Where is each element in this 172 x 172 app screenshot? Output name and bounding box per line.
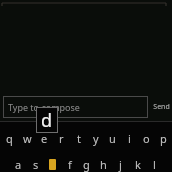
button[interactable]: a	[9, 155, 27, 172]
button[interactable]: r	[53, 129, 70, 147]
button[interactable]: q	[0, 129, 18, 147]
staticText: r	[59, 131, 64, 146]
staticText: g	[83, 157, 90, 172]
button[interactable]: l	[146, 155, 163, 172]
staticText: a	[15, 157, 22, 172]
staticText: w	[23, 131, 32, 146]
button[interactable]: g	[78, 155, 95, 172]
staticText: Send	[153, 102, 170, 112]
staticText: h	[100, 157, 107, 172]
staticText: u	[109, 131, 116, 146]
staticText: k	[135, 157, 141, 172]
staticText: e	[41, 131, 48, 146]
staticText: t	[77, 131, 81, 146]
staticText: s	[33, 157, 39, 172]
button[interactable]: k	[129, 155, 146, 172]
staticText: d	[41, 108, 53, 133]
staticText: o	[143, 131, 150, 146]
button[interactable]: e	[36, 129, 53, 147]
button[interactable]: h	[95, 155, 112, 172]
button[interactable]: t	[70, 129, 87, 147]
button[interactable]	[44, 155, 61, 172]
button[interactable]: i	[121, 129, 138, 147]
staticText: l	[153, 157, 156, 172]
button[interactable]: Send	[150, 96, 172, 118]
staticText: i	[128, 131, 131, 146]
staticText: Type to compose	[8, 101, 80, 113]
button[interactable]: y	[87, 129, 104, 147]
staticText: j	[119, 157, 122, 172]
staticText: f	[68, 157, 72, 172]
button[interactable]: Type to compose	[3, 96, 148, 118]
staticText: p	[160, 131, 167, 146]
button[interactable]: u	[104, 129, 121, 147]
button[interactable]: o	[138, 129, 155, 147]
staticText: y	[93, 131, 99, 146]
staticText: q	[6, 131, 13, 146]
button[interactable]: s	[27, 155, 44, 172]
button[interactable]: p	[155, 129, 172, 147]
button[interactable]: w	[18, 129, 36, 147]
button[interactable]: f	[61, 155, 78, 172]
button[interactable]: j	[112, 155, 129, 172]
